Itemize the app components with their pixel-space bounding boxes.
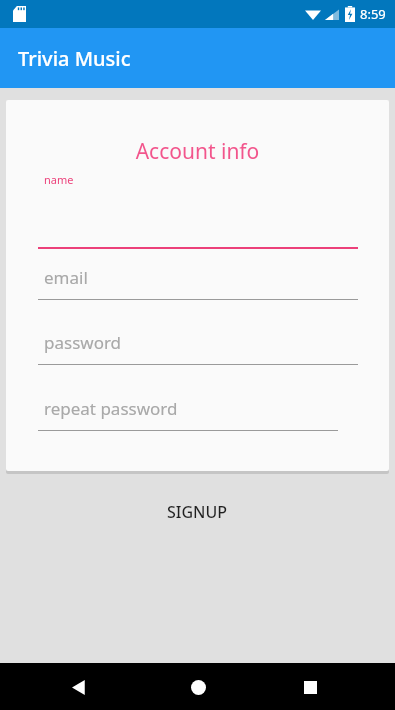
button[interactable]: Recent apps — [293, 670, 327, 704]
button[interactable] — [38, 225, 358, 249]
staticText: name — [44, 172, 74, 187]
button[interactable]: password — [38, 327, 358, 365]
staticText: 8:59 — [360, 5, 386, 23]
button[interactable]: Back — [62, 670, 96, 704]
button[interactable]: email — [38, 262, 358, 300]
button[interactable]: SIGNUP — [0, 486, 395, 538]
button[interactable]: repeat password — [38, 393, 338, 431]
staticText: SIGNUP — [167, 501, 228, 523]
staticText: Account info — [6, 137, 389, 166]
staticText: repeat password — [44, 397, 178, 420]
staticText: Trivia Music — [18, 45, 131, 72]
staticText: email — [44, 266, 88, 289]
staticText: password — [44, 331, 122, 354]
button[interactable]: Home — [181, 670, 215, 704]
